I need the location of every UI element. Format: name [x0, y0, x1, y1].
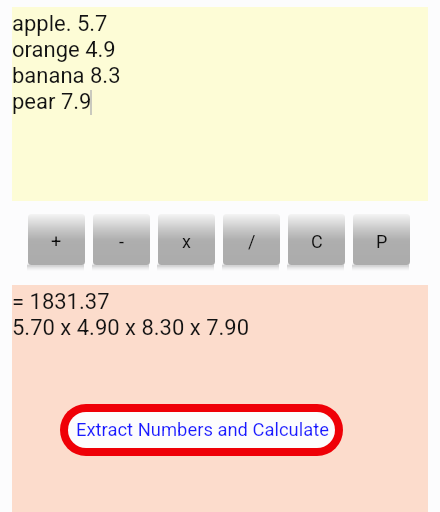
button[interactable]: Paste — [353, 214, 410, 265]
staticText: orange 4.9 — [12, 37, 116, 63]
staticText: pear 7.9 — [12, 89, 92, 115]
staticText: C — [311, 231, 323, 252]
button[interactable]: Subtract — [93, 214, 150, 265]
staticText: x — [182, 231, 191, 252]
button[interactable]: Multiply — [158, 214, 215, 265]
staticText: apple. 5.7 — [12, 11, 108, 37]
staticText: = 1831.37 — [12, 289, 110, 315]
staticText: - — [119, 231, 124, 252]
button[interactable]: Input text field — [12, 7, 428, 201]
staticText: P — [376, 231, 388, 252]
staticText: + — [51, 231, 62, 252]
staticText: banana 8.3 — [12, 63, 121, 89]
staticText: / — [248, 231, 256, 252]
staticText: Extract Numbers and Calculate — [76, 419, 329, 441]
button[interactable]: Clear — [288, 214, 345, 265]
button[interactable]: Add — [28, 214, 85, 265]
staticText: 5.70 x 4.90 x 8.30 x 7.90 — [12, 315, 250, 341]
button[interactable]: Divide — [223, 214, 280, 265]
button[interactable]: Extract Numbers and Calculate — [68, 412, 335, 448]
